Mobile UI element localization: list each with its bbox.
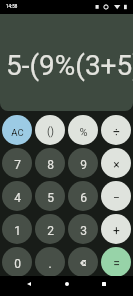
button[interactable]: 5 xyxy=(35,181,65,211)
button[interactable]: Home xyxy=(59,276,75,292)
staticText: ÷ xyxy=(113,125,120,139)
staticText: − xyxy=(113,191,120,205)
button[interactable]: Percent xyxy=(68,115,98,145)
button[interactable]: Plus xyxy=(101,214,131,244)
staticText: 6 xyxy=(80,191,87,205)
button[interactable]: Back xyxy=(21,276,37,292)
staticText: 0 xyxy=(14,257,21,271)
button[interactable]: 3 xyxy=(68,214,98,244)
button[interactable]: Equals xyxy=(101,247,131,277)
staticText: 1 xyxy=(14,224,21,238)
button[interactable]: 8 xyxy=(35,148,65,178)
staticText: = xyxy=(113,257,120,271)
staticText: 5-(9%(3+5) xyxy=(6,49,133,82)
staticText: 14:58 xyxy=(6,4,18,9)
button[interactable]: Backspace xyxy=(68,247,98,277)
staticText: + xyxy=(113,224,120,238)
button[interactable]: 7 xyxy=(2,148,32,178)
staticText: AC xyxy=(11,127,24,138)
button[interactable]: 2 xyxy=(35,214,65,244)
staticText: 8 xyxy=(47,158,54,172)
button[interactable]: 0 xyxy=(2,247,32,277)
button[interactable]: 9 xyxy=(68,148,98,178)
button[interactable]: Divide xyxy=(101,115,131,145)
button[interactable]: Minus xyxy=(101,181,131,211)
staticText: × xyxy=(113,158,120,172)
staticText: 2 xyxy=(47,224,54,238)
button[interactable]: 4 xyxy=(2,181,32,211)
staticText: 9 xyxy=(80,158,87,172)
button[interactable]: 6 xyxy=(68,181,98,211)
staticText: . xyxy=(48,257,52,271)
staticText: 3 xyxy=(80,224,87,238)
staticText: % xyxy=(79,126,88,139)
staticText: 5 xyxy=(47,191,54,205)
staticText: 7 xyxy=(14,158,21,172)
button[interactable]: All clear xyxy=(2,115,32,145)
button[interactable]: Recent apps xyxy=(96,276,112,292)
button[interactable]: Parentheses xyxy=(35,115,65,145)
staticText: () xyxy=(47,126,54,138)
staticText: 4 xyxy=(14,191,21,205)
button[interactable]: Multiply xyxy=(101,148,131,178)
button[interactable]: 1 xyxy=(2,214,32,244)
button[interactable]: Decimal point xyxy=(35,247,65,277)
